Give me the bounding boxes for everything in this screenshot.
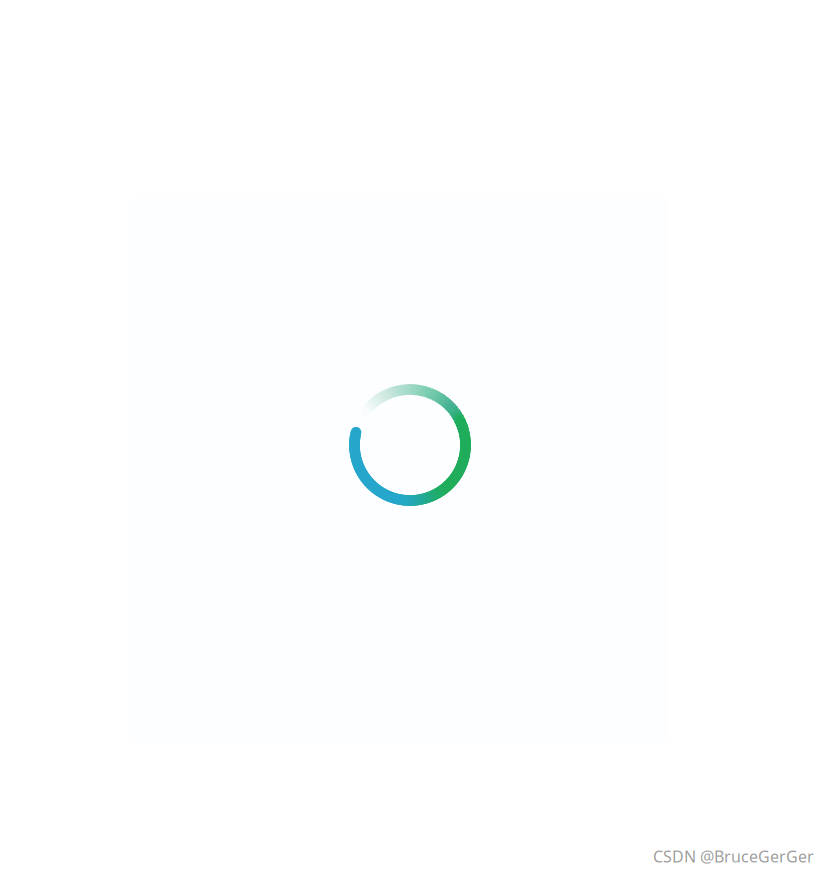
staticText: CSDN @BruceGerGer	[653, 846, 814, 867]
